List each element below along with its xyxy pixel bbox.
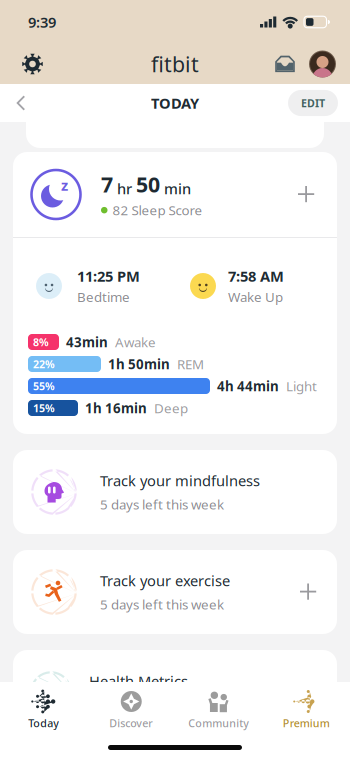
staticText: 11:25 PM — [77, 266, 140, 286]
staticText: min — [160, 179, 191, 198]
button[interactable]: Log sleep — [288, 176, 325, 213]
staticText: Deep — [154, 399, 188, 417]
staticText: Wake Up — [228, 288, 283, 306]
staticText: Awake — [115, 333, 156, 351]
staticText: hr — [113, 179, 136, 198]
staticText: 7 — [101, 170, 113, 198]
staticText: REM — [177, 355, 204, 373]
staticText: Bedtime — [77, 288, 130, 306]
staticText: 15% — [33, 401, 55, 415]
staticText: Today — [28, 716, 59, 730]
staticText: 9:39 — [28, 12, 56, 32]
staticText: 5 days left this week — [100, 595, 224, 613]
button[interactable]: Today — [0, 682, 87, 732]
button[interactable]: Premium — [262, 682, 350, 732]
button[interactable]: EDIT — [288, 90, 338, 116]
staticText: 7:58 AM — [228, 266, 284, 286]
button[interactable]: Health Metrics — [13, 650, 337, 734]
staticText: Breathing rate, HRV & more — [89, 695, 260, 713]
button[interactable]: Inbox — [267, 46, 303, 81]
staticText: fitbit — [151, 50, 199, 78]
button[interactable]: Profile — [303, 50, 336, 77]
staticText: TODAY — [151, 93, 199, 113]
button[interactable]: Settings — [14, 45, 51, 82]
staticText: z — [61, 175, 68, 195]
staticText: EDIT — [301, 96, 325, 110]
button[interactable]: Track your mindfulness — [13, 450, 337, 534]
button[interactable]: Community — [175, 682, 262, 732]
staticText: 1h 50min — [108, 355, 170, 373]
staticText: 82 Sleep Score — [112, 201, 202, 219]
staticText: Track your mindfulness — [100, 471, 260, 490]
staticText: Discover — [109, 716, 153, 730]
button[interactable]: Track your exercise — [13, 550, 337, 634]
staticText: 4h 44min — [217, 377, 279, 395]
staticText: 8% — [33, 335, 49, 349]
staticText: Track your exercise — [100, 571, 230, 590]
staticText: Health Metrics — [89, 671, 188, 691]
staticText: 5 days left this week — [100, 495, 224, 513]
staticText: 22% — [33, 357, 55, 371]
staticText: Premium — [283, 716, 330, 730]
staticText: 43min — [66, 333, 108, 351]
staticText: 50 — [136, 170, 160, 198]
button[interactable]: Discover — [87, 682, 175, 732]
button[interactable]: Back — [6, 85, 34, 121]
staticText: Community — [188, 716, 249, 730]
staticText: 1h 16min — [85, 399, 147, 417]
staticText: Light — [286, 377, 317, 395]
staticText: 55% — [33, 379, 55, 393]
